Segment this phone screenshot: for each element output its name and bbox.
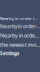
staticText: the newest invites	[0, 41, 40, 48]
staticText: Nearby in order to see	[0, 32, 40, 39]
staticText: Nearby in order to see	[0, 23, 40, 30]
staticText: Nearby in order to see	[0, 15, 40, 21]
staticText: Settings	[0, 50, 19, 57]
